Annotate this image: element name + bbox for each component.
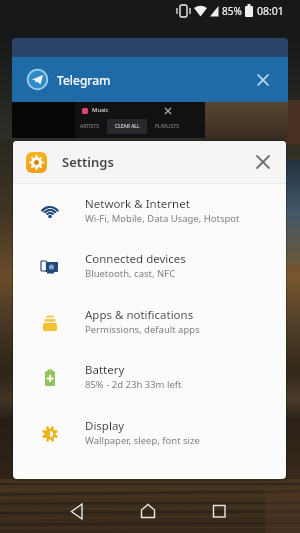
staticText: 08:01	[257, 4, 284, 18]
staticText: Network & Internet	[85, 196, 190, 212]
button[interactable]: Display	[13, 414, 286, 469]
staticText: Display	[85, 418, 125, 434]
staticText: Settings	[62, 153, 114, 171]
staticText: Wi-Fi, Mobile, Data Usage, Hotspot	[85, 212, 240, 225]
staticText: 85%	[222, 4, 242, 18]
staticText: Battery	[85, 362, 125, 378]
button[interactable]	[130, 495, 166, 531]
button[interactable]	[251, 150, 275, 174]
button[interactable]: Settings	[13, 141, 286, 479]
staticText: Permissions, default apps	[85, 323, 200, 336]
staticText: PLAYLISTS	[155, 123, 179, 130]
button[interactable]: CLEAR ALL	[107, 119, 147, 134]
button[interactable]: Battery	[13, 358, 286, 413]
staticText: Connected devices	[85, 251, 186, 267]
staticText: Music	[92, 106, 109, 114]
button[interactable]: Telegram	[12, 38, 288, 138]
button[interactable]	[251, 68, 275, 92]
button[interactable]: Connected devices	[13, 247, 286, 302]
staticText: Wallpaper, sleep, font size	[85, 434, 200, 447]
staticText: Apps & notifications	[85, 307, 194, 323]
button[interactable]	[59, 495, 95, 531]
staticText: Bluetooth, cast, NFC	[85, 267, 176, 280]
button[interactable]	[201, 495, 237, 531]
staticText: CLEAR ALL	[115, 123, 140, 130]
button[interactable]: Network & Internet	[13, 192, 286, 247]
staticText: ARTISTS	[80, 123, 100, 130]
staticText: Telegram	[57, 72, 111, 88]
button[interactable]: Apps & notifications	[13, 303, 286, 358]
staticText: 85% - 2d 23h 33m left	[85, 378, 182, 391]
